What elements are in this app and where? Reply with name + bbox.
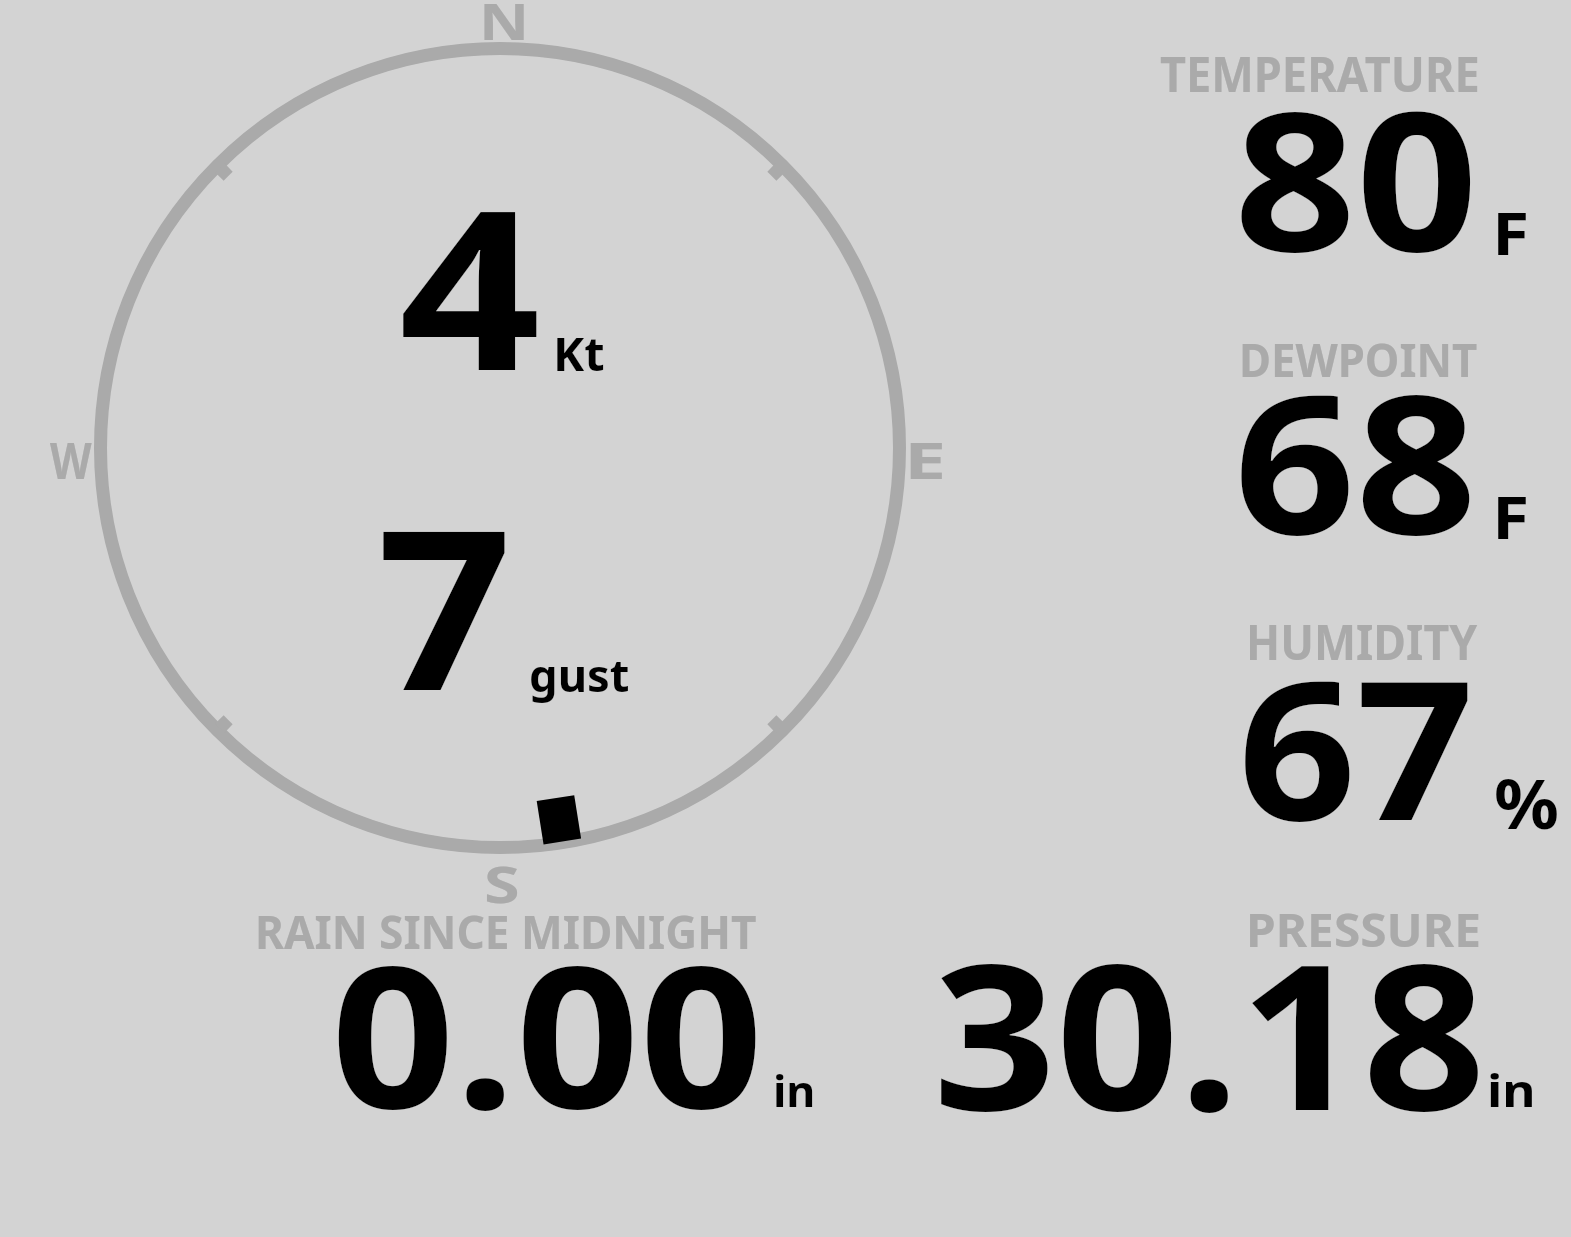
staticText: 80 (1234, 46, 1478, 308)
staticText: 7 (377, 454, 513, 755)
staticText: PRESSURE (1246, 898, 1481, 961)
button[interactable]: Humidity 67 percent (1150, 607, 1540, 837)
staticText: RAIN SINCE MIDNIGHT (255, 900, 757, 963)
staticText: E (904, 426, 946, 494)
staticText: % (1494, 756, 1560, 849)
button[interactable]: Rain since midnight 0.00 inches (240, 895, 830, 1120)
staticText: N (479, 0, 530, 54)
staticText: gust (529, 645, 630, 705)
button[interactable]: Wind direction compass, 4 knots gusting … (94, 42, 906, 854)
button[interactable]: Dew point 68 degrees Fahrenheit (1150, 325, 1540, 555)
button[interactable]: Wind speed 4 knots (380, 190, 620, 380)
staticText: 4 (399, 134, 541, 435)
staticText: TEMPERATURE (1160, 41, 1480, 106)
staticText: in (1487, 1059, 1536, 1120)
button[interactable]: Temperature 80 degrees Fahrenheit (1150, 40, 1540, 270)
staticText: 30.18 (933, 895, 1486, 1169)
staticText: F (1492, 192, 1530, 272)
button[interactable]: Pressure 30.18 inches (920, 893, 1540, 1120)
staticText: DEWPOINT (1239, 328, 1477, 391)
staticText: F (1492, 476, 1530, 556)
staticText: 68 (1234, 328, 1477, 591)
staticText: in (773, 1061, 816, 1120)
staticText: W (50, 426, 92, 494)
staticText: 0.00 (331, 900, 764, 1166)
button[interactable]: Wind gust 7 knots (360, 510, 640, 705)
staticText: S (484, 848, 521, 917)
staticText: HUMIDITY (1246, 609, 1478, 674)
staticText: Kt (553, 321, 605, 385)
staticText: 67 (1238, 614, 1474, 877)
